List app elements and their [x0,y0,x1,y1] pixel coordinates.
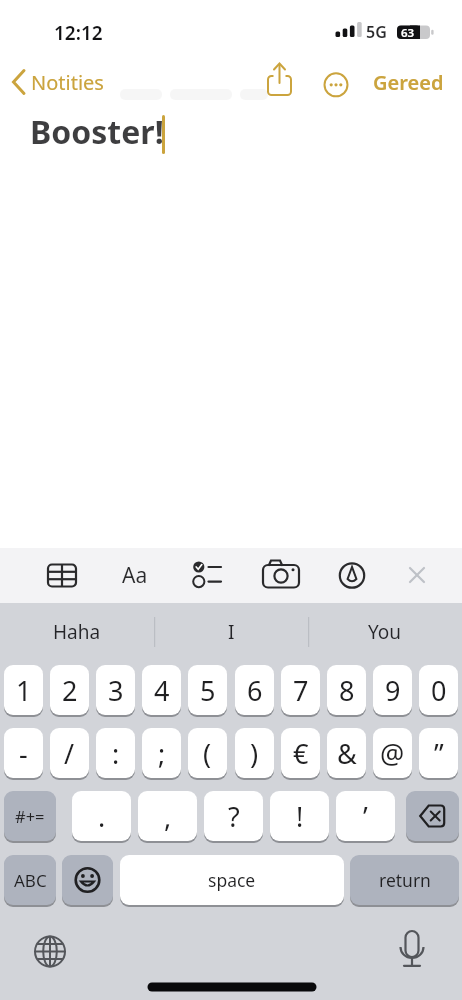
button[interactable] [259,553,303,597]
button[interactable]: 3 [96,665,135,715]
staticText: 0 [431,672,447,709]
staticText: : [112,735,120,772]
button[interactable] [262,60,300,100]
staticText: ABC [14,869,47,892]
button[interactable]: . [72,791,131,841]
button[interactable]: return [350,855,459,905]
button[interactable]: : [96,728,135,778]
staticText: Notities [31,69,104,96]
button[interactable]: ( [188,728,227,778]
staticText: You [368,619,402,645]
staticText: space [208,868,256,892]
button[interactable] [399,557,435,593]
button[interactable]: #+= [4,791,56,841]
staticText: & [337,735,357,772]
staticText: / [64,735,75,772]
staticText: @ [380,735,405,772]
button[interactable]: € [281,728,320,778]
staticText: Aa [122,561,148,590]
button[interactable]: ABC [4,855,56,905]
button[interactable]: space [120,855,344,905]
staticText: 5 [200,672,216,709]
button[interactable] [8,64,138,98]
button[interactable]: 4 [142,665,181,715]
button[interactable] [321,69,353,101]
button[interactable]: - [4,728,43,778]
button[interactable]: 0 [419,665,458,715]
staticText: , [164,798,172,835]
button[interactable]: 6 [235,665,274,715]
button[interactable] [32,933,68,970]
button[interactable]: ! [270,791,329,841]
button[interactable]: 8 [327,665,366,715]
staticText: . [98,798,106,835]
staticText: 6 [247,672,263,709]
button[interactable]: , [138,791,197,841]
staticText: 5G [366,21,387,40]
button[interactable]: 5 [188,665,227,715]
button[interactable]: @ [373,728,412,778]
staticText: 1 [16,672,32,709]
button[interactable]: 2 [50,665,89,715]
staticText: ? [228,798,240,835]
staticText: Booster! [30,110,164,154]
staticText: #+= [15,805,45,827]
button[interactable]: ) [235,728,274,778]
staticText: ( [203,735,212,772]
button[interactable]: I [154,603,308,661]
staticText: ) [250,735,259,772]
staticText: - [19,735,28,772]
button[interactable]: ” [419,728,458,778]
button[interactable]: ’ [336,791,395,841]
button[interactable] [185,553,229,597]
button[interactable]: / [50,728,89,778]
staticText: 63 [401,25,415,39]
button[interactable]: ; [142,728,181,778]
staticText: 2 [62,672,78,709]
button[interactable]: 7 [281,665,320,715]
button[interactable]: Aa [113,560,157,590]
staticText: 7 [293,672,309,709]
button[interactable] [40,553,84,597]
staticText: return [379,868,431,892]
button[interactable]: & [327,728,366,778]
staticText: I [228,619,235,645]
staticText: Haha [53,619,101,645]
button[interactable] [62,855,113,905]
button[interactable]: Gereed [368,67,448,97]
staticText: ’ [363,798,368,835]
button[interactable] [330,553,374,597]
staticText: € [293,735,309,772]
staticText: Gereed [373,69,444,96]
staticText: 4 [154,672,170,709]
button[interactable] [406,791,459,841]
staticText: 9 [385,672,401,709]
staticText: 12:12 [54,20,103,42]
button[interactable]: 9 [373,665,412,715]
button[interactable]: Haha [0,603,154,661]
staticText: ! [296,798,304,835]
staticText: 3 [108,672,124,709]
button[interactable]: You [308,603,462,661]
staticText: ; [158,735,166,772]
staticText: 8 [339,672,355,709]
button[interactable]: 1 [4,665,43,715]
button[interactable] [394,925,430,973]
staticText: ” [434,735,444,772]
button[interactable]: ? [204,791,263,841]
